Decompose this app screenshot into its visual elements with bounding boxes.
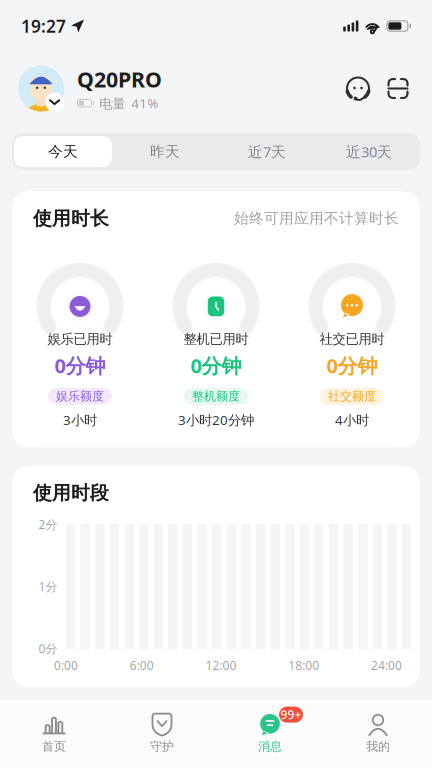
staticText: 社交额度 [328,389,376,404]
staticText: 24:00 [371,657,402,673]
staticText: 4小时 [335,411,369,429]
staticText: 6:00 [130,657,154,673]
staticText: 守护 [150,739,174,754]
button[interactable]: 我的 [324,699,432,768]
button[interactable]: 近7天 [216,133,318,170]
staticText: 娱乐额度 [56,389,104,404]
staticText: 3小时20分钟 [178,411,254,429]
staticText: 0分钟 [326,352,377,379]
staticText: 社交已用时 [319,331,384,347]
staticText: 昨天 [150,142,180,160]
staticText: 首页 [42,739,66,754]
staticText: 今天 [48,142,78,160]
staticText: 娱乐已用时 [47,331,112,347]
staticText: 使用时长 [33,207,109,230]
staticText: 12:00 [205,657,236,673]
staticText: 1分 [38,578,57,594]
button[interactable]: 首页 [0,699,108,768]
staticText: 我的 [366,739,390,754]
button[interactable]: 99+ [216,699,324,768]
button[interactable]: 近30天 [318,133,420,170]
staticText: 整机已用时 [183,331,248,347]
staticText: 19:27 [21,14,66,37]
staticText: 始终可用应用不计算时长 [234,209,399,227]
staticText: 99+ [280,707,301,723]
button[interactable]: 扫一扫 [378,68,418,108]
staticText: Q20PRO [77,65,162,93]
staticText: 0分钟 [190,352,241,379]
staticText: 0分钟 [54,352,105,379]
button[interactable]: 客服 [338,68,378,108]
staticText: 近30天 [346,142,392,161]
button[interactable]: 守护 [108,699,216,768]
staticText: 3小时 [63,411,97,429]
staticText: 使用时段 [33,482,109,504]
staticText: 0分 [38,641,57,656]
staticText: 整机额度 [192,389,240,404]
staticText: 电量 41% [99,94,158,112]
staticText: 近7天 [248,142,286,161]
button[interactable]: 今天 [12,133,114,170]
staticText: 0:00 [54,657,78,673]
button[interactable]: 昨天 [114,133,216,170]
staticText: 2分 [38,516,57,532]
staticText: 消息 [258,739,282,754]
staticText: 18:00 [288,657,319,673]
